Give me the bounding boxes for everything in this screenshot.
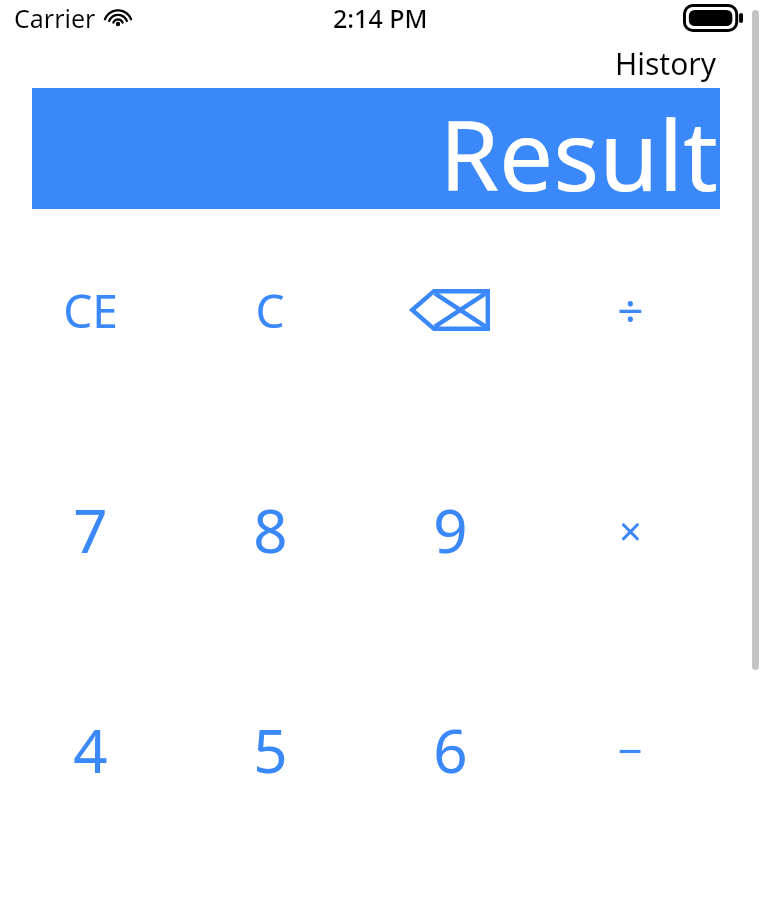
staticText: Carrier — [14, 1, 96, 35]
staticText: 5 — [253, 709, 288, 791]
button[interactable]: ÷ — [540, 265, 720, 355]
button[interactable]: − — [540, 705, 720, 795]
staticText: 8 — [253, 489, 288, 571]
button[interactable]: 7 — [0, 485, 180, 575]
staticText: C — [255, 279, 285, 342]
button[interactable]: Backspace — [360, 265, 540, 355]
button[interactable]: × — [540, 485, 720, 575]
staticText: − — [617, 720, 643, 780]
staticText: 7 — [73, 489, 108, 571]
button[interactable]: 4 — [0, 705, 180, 795]
staticText: 2:14 PM — [333, 1, 428, 35]
staticText: 6 — [433, 709, 468, 791]
staticText: ÷ — [617, 279, 644, 342]
staticText: × — [619, 503, 642, 557]
button[interactable]: 6 — [360, 705, 540, 795]
staticText: History — [615, 43, 717, 84]
staticText: Result — [439, 88, 718, 209]
button[interactable]: 9 — [360, 485, 540, 575]
button[interactable]: History — [615, 43, 717, 84]
staticText: 9 — [433, 489, 468, 571]
button[interactable]: Result — [32, 88, 720, 209]
staticText: CE — [63, 279, 118, 342]
other: Battery full — [683, 4, 743, 32]
button[interactable]: 5 — [180, 705, 360, 795]
staticText: 4 — [73, 709, 108, 791]
button[interactable]: C — [180, 265, 360, 355]
button[interactable]: CE — [0, 265, 180, 355]
button[interactable]: 8 — [180, 485, 360, 575]
